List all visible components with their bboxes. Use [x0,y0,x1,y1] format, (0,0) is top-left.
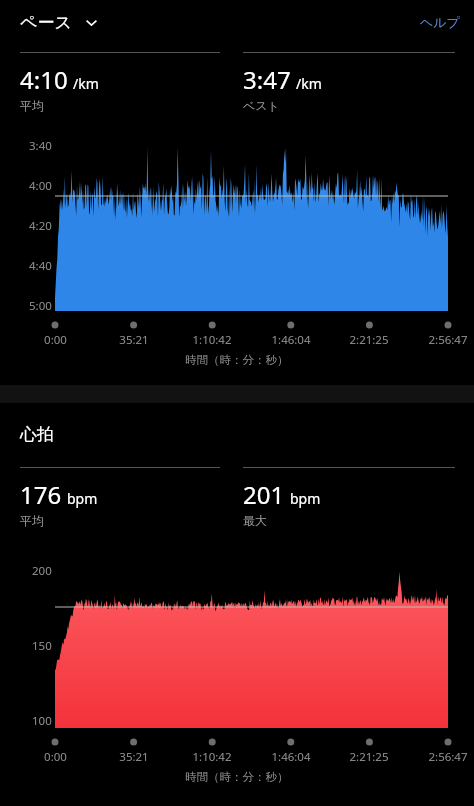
staticText: 200 [32,563,52,579]
staticText: 176 [20,478,62,511]
staticText: 4:10 [20,63,68,96]
staticText: 1:10:42 [192,749,232,765]
staticText: 0:00 [44,749,67,765]
staticText: ヘルプ [420,14,460,30]
button[interactable]: ペース [14,7,104,38]
staticText: 100 [32,713,52,729]
staticText: 4:20 [29,218,52,234]
staticText: 3:47 [243,63,291,96]
staticText: 2:21:25 [349,332,389,348]
staticText: 1:46:04 [271,749,311,765]
staticText: 1:46:04 [271,332,311,348]
staticText: bpm [67,489,98,508]
staticText: 2:56:47 [428,749,468,765]
staticText: 4:40 [29,258,52,274]
staticText: ペース [20,12,72,33]
button[interactable]: 201 [243,467,455,528]
staticText: 35:21 [119,332,149,348]
staticText: 3:40 [29,138,52,154]
staticText: 2:56:47 [428,332,468,348]
staticText: 150 [32,638,52,654]
staticText: /km [296,74,322,93]
staticText: 平均 [20,98,44,113]
button[interactable]: 心拍 [14,419,60,450]
staticText: 201 [243,478,285,511]
button[interactable]: 176 [20,467,220,528]
staticText: 5:00 [29,298,52,314]
staticText: bpm [290,489,321,508]
staticText: 時間（時：分：秒） [185,770,289,784]
staticText: 心拍 [20,424,54,445]
staticText: 4:00 [29,178,52,194]
staticText: 0:00 [44,332,67,348]
staticText: 1:10:42 [192,332,232,348]
staticText: 平均 [20,513,44,528]
button[interactable]: ヘルプ [406,5,474,39]
staticText: ベスト [243,98,280,113]
staticText: 35:21 [119,749,149,765]
staticText: /km [73,74,99,93]
staticText: 最大 [243,513,267,528]
staticText: 時間（時：分：秒） [185,353,289,367]
button[interactable]: 3:47 [243,52,455,113]
staticText: 2:21:25 [349,749,389,765]
button[interactable]: 4:10 [20,52,220,113]
